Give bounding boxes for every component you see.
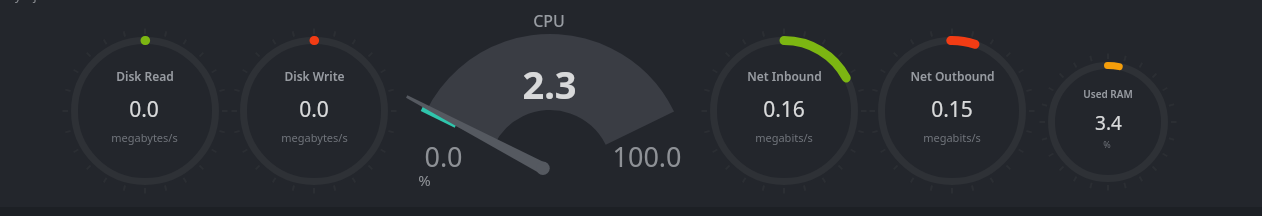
staticText: 0.0 <box>424 138 463 175</box>
staticText: 100.0 <box>612 138 682 175</box>
staticText: Used RAM <box>1083 87 1133 101</box>
button[interactable] <box>1048 62 1168 182</box>
button[interactable] <box>405 10 695 206</box>
staticText: Disk Read <box>116 68 174 84</box>
staticText: Net Outbound <box>910 68 995 84</box>
staticText: Disk Write <box>284 68 345 84</box>
staticText: megabytes/s <box>111 130 178 145</box>
button[interactable] <box>238 35 390 187</box>
staticText: 2.3 <box>522 58 577 108</box>
staticText: 3.4 <box>1095 110 1122 136</box>
staticText: 0.16 <box>763 95 805 124</box>
staticText: megabits/s <box>923 130 981 145</box>
staticText: megabytes/s <box>281 130 348 145</box>
staticText: % <box>418 170 431 190</box>
staticText: megabits/s <box>755 130 813 145</box>
staticText: 0.15 <box>931 95 973 124</box>
staticText: Net Inbound <box>747 68 822 84</box>
staticText: y j <box>15 0 37 3</box>
staticText: 0.0 <box>299 95 329 124</box>
button[interactable] <box>69 35 221 187</box>
button[interactable] <box>876 35 1028 187</box>
staticText: 0.0 <box>129 95 159 124</box>
staticText: CPU <box>533 10 565 32</box>
staticText: % <box>1103 138 1111 150</box>
button[interactable] <box>708 35 860 187</box>
